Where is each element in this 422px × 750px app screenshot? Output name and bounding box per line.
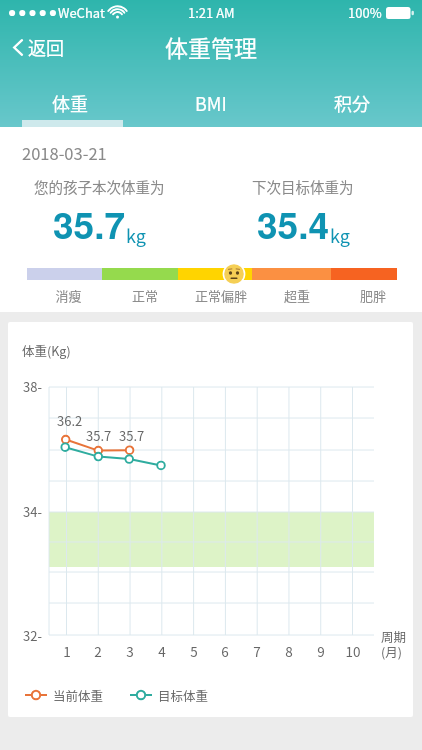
staticText: 35.7 <box>86 426 116 445</box>
staticText: 消瘦 <box>30 286 107 305</box>
staticText: 10 <box>343 641 363 661</box>
staticText: 您的孩子本次体重为 <box>34 176 165 197</box>
staticText: 38- <box>10 377 42 396</box>
staticText: WeChat <box>58 3 105 22</box>
staticText: 1:21 AM <box>188 3 235 22</box>
staticText: 7 <box>247 641 267 661</box>
staticText: 2018-03-21 <box>22 141 107 165</box>
staticText: 当前体重 <box>53 686 104 704</box>
staticText: 34- <box>10 502 42 521</box>
button[interactable]: 体重 <box>0 70 140 127</box>
staticText: 5 <box>184 641 204 661</box>
staticText: kg <box>330 222 350 248</box>
staticText: 9 <box>311 641 331 661</box>
staticText: 下次目标体重为 <box>252 176 354 197</box>
staticText: 目标体重 <box>158 686 209 704</box>
staticText: 35.4 <box>257 197 330 250</box>
staticText: 肥胖 <box>335 286 411 305</box>
staticText: 35.7 <box>53 197 126 250</box>
staticText: (月) <box>381 642 411 660</box>
staticText: 32- <box>10 626 42 645</box>
staticText: 4 <box>152 641 172 661</box>
staticText: 正常 <box>107 286 183 305</box>
staticText: 35.7 <box>119 426 149 445</box>
staticText: 积分 <box>334 90 370 116</box>
staticText: 周期 <box>381 627 411 645</box>
staticText: 2 <box>88 641 108 661</box>
button[interactable]: BMI <box>140 70 281 127</box>
staticText: BMI <box>195 90 227 116</box>
button[interactable]: 积分 <box>281 70 422 127</box>
staticText: 1 <box>57 641 77 661</box>
staticText: 体重(Kg) <box>22 341 71 359</box>
staticText: 返回 <box>28 34 64 60</box>
staticText: 100% <box>348 3 382 22</box>
staticText: 超重 <box>259 286 335 305</box>
staticText: 6 <box>215 641 235 661</box>
staticText: 体重管理 <box>165 30 257 63</box>
staticText: 正常偏胖 <box>183 286 259 305</box>
staticText: kg <box>126 222 146 248</box>
staticText: 3 <box>120 641 140 661</box>
button[interactable]: 返回 <box>0 28 78 66</box>
staticText: 36.2 <box>57 411 87 430</box>
staticText: 体重 <box>52 90 88 116</box>
staticText: 8 <box>279 641 299 661</box>
